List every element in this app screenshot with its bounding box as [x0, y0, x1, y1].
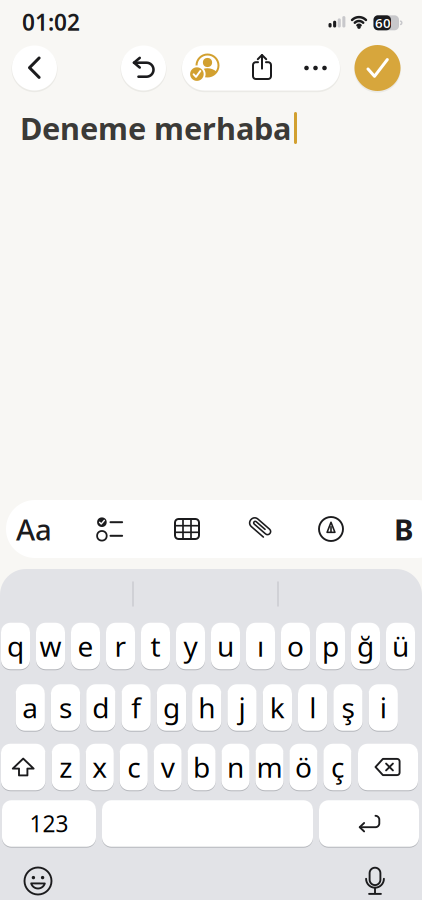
- button[interactable]: ç: [323, 743, 351, 791]
- button[interactable]: [174, 518, 200, 540]
- staticText: z: [59, 748, 72, 786]
- button[interactable]: [11, 45, 57, 91]
- staticText: ç: [331, 748, 344, 786]
- staticText: B: [394, 509, 414, 548]
- staticText: ş: [341, 689, 354, 726]
- staticText: Aa: [16, 509, 52, 548]
- button[interactable]: ü: [386, 622, 415, 670]
- staticText: i: [380, 689, 387, 726]
- button[interactable]: u: [211, 622, 240, 670]
- staticText: ö: [295, 748, 312, 786]
- staticText: o: [287, 627, 304, 665]
- button[interactable]: f: [121, 683, 151, 732]
- button[interactable]: j: [227, 683, 257, 732]
- button[interactable]: i: [369, 683, 398, 732]
- button[interactable]: s: [51, 683, 80, 732]
- button[interactable]: [96, 516, 123, 542]
- button[interactable]: g: [157, 683, 186, 732]
- button[interactable]: o: [281, 622, 310, 670]
- button[interactable]: l: [298, 683, 327, 732]
- button[interactable]: [188, 53, 222, 85]
- staticText: c: [127, 748, 140, 786]
- button[interactable]: 123: [2, 799, 96, 848]
- button[interactable]: [358, 743, 418, 791]
- button[interactable]: d: [86, 683, 115, 732]
- staticText: y: [183, 627, 197, 665]
- staticText: p: [322, 627, 339, 665]
- button[interactable]: [1, 743, 45, 791]
- button[interactable]: r: [106, 622, 135, 670]
- button[interactable]: y: [176, 622, 205, 670]
- staticText: 01:02: [22, 7, 80, 37]
- button[interactable]: Aa: [9, 500, 59, 558]
- button[interactable]: k: [263, 683, 292, 732]
- staticText: 60: [375, 14, 391, 32]
- staticText: ı: [257, 627, 264, 665]
- staticText: e: [77, 627, 93, 665]
- staticText: 123: [29, 808, 68, 838]
- staticText: ü: [392, 627, 409, 665]
- button[interactable]: w: [36, 622, 65, 670]
- button[interactable]: ğ: [351, 622, 380, 670]
- staticText: j: [238, 689, 245, 726]
- staticText: x: [92, 748, 107, 786]
- staticText: h: [198, 689, 215, 726]
- button[interactable]: c: [120, 743, 148, 791]
- button[interactable]: e: [71, 622, 100, 670]
- button[interactable]: [319, 799, 419, 848]
- staticText: m: [256, 748, 282, 786]
- staticText: v: [161, 748, 175, 786]
- button[interactable]: x: [86, 743, 114, 791]
- staticText: g: [163, 689, 180, 726]
- staticText: d: [92, 689, 109, 726]
- button[interactable]: ö: [289, 743, 318, 791]
- button[interactable]: [102, 799, 313, 848]
- staticText: a: [22, 689, 38, 726]
- staticText: f: [131, 689, 141, 726]
- button[interactable]: z: [52, 743, 80, 791]
- staticText: s: [59, 689, 72, 726]
- button[interactable]: [318, 516, 343, 541]
- button[interactable]: ı: [246, 622, 275, 670]
- staticText: b: [193, 748, 210, 786]
- button[interactable]: [299, 45, 331, 90]
- button[interactable]: q: [1, 622, 30, 670]
- button[interactable]: [252, 54, 272, 80]
- staticText: n: [227, 748, 244, 786]
- staticText: q: [7, 627, 24, 665]
- staticText: u: [217, 627, 234, 665]
- staticText: t: [150, 627, 160, 665]
- button[interactable]: b: [187, 743, 216, 791]
- button[interactable]: [120, 45, 166, 91]
- button[interactable]: [354, 45, 400, 91]
- staticText: k: [270, 689, 285, 726]
- button[interactable]: m: [255, 743, 284, 791]
- button[interactable]: n: [221, 743, 250, 791]
- button[interactable]: [24, 867, 52, 895]
- button[interactable]: a: [16, 683, 45, 732]
- button[interactable]: h: [192, 683, 221, 732]
- staticText: r: [114, 627, 126, 665]
- button[interactable]: [364, 867, 385, 897]
- staticText: w: [39, 627, 61, 665]
- button[interactable]: t: [141, 622, 170, 670]
- button[interactable]: p: [316, 622, 345, 670]
- staticText: Deneme merhaba: [20, 108, 291, 148]
- button[interactable]: B: [389, 500, 419, 558]
- button[interactable]: v: [154, 743, 182, 791]
- button[interactable]: [250, 516, 274, 541]
- button[interactable]: ş: [333, 683, 363, 732]
- staticText: ğ: [357, 627, 374, 665]
- staticText: l: [309, 689, 316, 726]
